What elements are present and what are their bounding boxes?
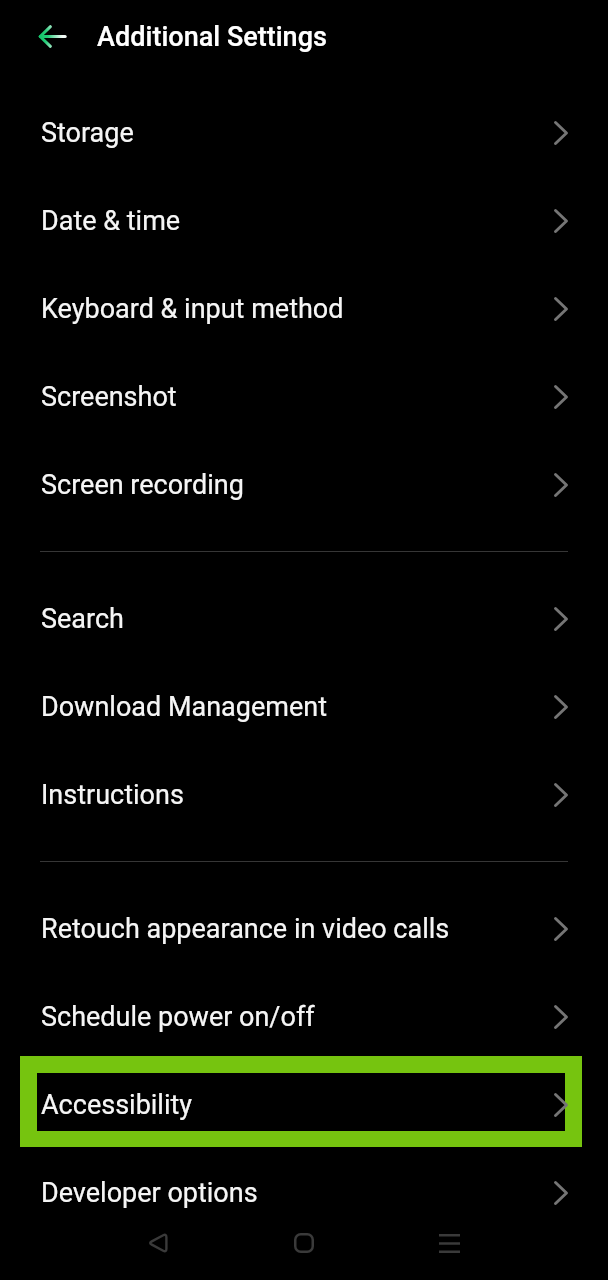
staticText: Date & time xyxy=(41,205,181,237)
staticText: Search xyxy=(41,603,124,635)
button[interactable]: Schedule power on/off xyxy=(0,973,608,1061)
staticText: Screen recording xyxy=(41,469,244,501)
staticText: Schedule power on/off xyxy=(41,1001,315,1033)
button[interactable]: Screenshot xyxy=(0,353,608,441)
button[interactable]: Back xyxy=(125,1211,189,1275)
button[interactable]: Date & time xyxy=(0,177,608,265)
button[interactable]: Screen recording xyxy=(0,441,608,529)
staticText: Instructions xyxy=(41,779,184,811)
staticText: Download Management xyxy=(41,691,327,723)
staticText: Storage xyxy=(41,117,134,149)
staticText: Keyboard & input method xyxy=(41,293,344,325)
button[interactable]: Accessibility xyxy=(0,1061,608,1149)
button[interactable]: Retouch appearance in video calls xyxy=(0,885,608,973)
staticText: Screenshot xyxy=(41,381,177,413)
staticText: Developer options xyxy=(41,1177,258,1209)
staticText: Additional Settings xyxy=(97,21,327,53)
staticText: Retouch appearance in video calls xyxy=(41,913,450,945)
button[interactable]: Developer options xyxy=(0,1149,608,1237)
button[interactable]: Recents xyxy=(417,1211,481,1275)
staticText: Accessibility xyxy=(41,1089,193,1121)
button[interactable]: Storage xyxy=(0,89,608,177)
button[interactable]: Back xyxy=(28,12,76,60)
button[interactable]: Home xyxy=(272,1211,336,1275)
button[interactable]: Keyboard & input method xyxy=(0,265,608,353)
button[interactable]: Instructions xyxy=(0,751,608,839)
button[interactable]: Search xyxy=(0,575,608,663)
button[interactable]: Download Management xyxy=(0,663,608,751)
